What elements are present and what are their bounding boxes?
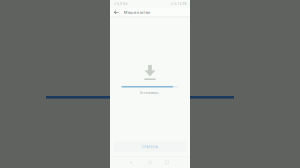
button[interactable]: Home — [144, 160, 155, 165]
button[interactable]: ОТМЕНА — [113, 141, 186, 152]
button[interactable]: Back — [113, 9, 119, 15]
staticText: ОТМЕНА — [141, 144, 158, 149]
staticText: ·ıl 0,8 K/s — [113, 2, 127, 6]
button[interactable]: Recent apps — [161, 160, 172, 165]
staticText: Машиностан — [124, 10, 151, 15]
staticText: ıl ılı 13:08 — [171, 2, 187, 6]
button[interactable]: Back — [128, 160, 139, 165]
staticText: Установка... — [139, 90, 160, 95]
